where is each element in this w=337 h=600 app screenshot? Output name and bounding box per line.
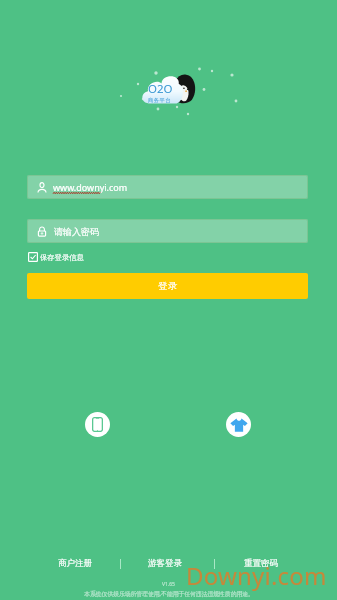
button[interactable]: Shop login xyxy=(226,412,251,437)
button[interactable]: 请输入密码 xyxy=(27,219,308,243)
staticText: 商务平台 xyxy=(148,97,172,104)
button[interactable]: 游客登录 xyxy=(131,553,199,573)
staticText: V1.65 xyxy=(162,581,175,588)
button[interactable]: 保存登录信息 xyxy=(28,252,84,262)
staticText: Downyi.com xyxy=(186,559,327,592)
button[interactable]: 重置密码 xyxy=(227,553,295,573)
staticText: www.downyi.com xyxy=(53,181,128,193)
button[interactable]: 登录 xyxy=(27,273,308,299)
staticText: O2O xyxy=(148,81,173,97)
staticText: 本系统仅供娱乐场所管理使用,不能用于任何违法违规性质的用途。 xyxy=(84,590,254,598)
button[interactable]: Mobile login xyxy=(85,412,110,437)
staticText: 重置密码 xyxy=(244,558,278,569)
button[interactable]: 商户注册 xyxy=(41,553,109,573)
staticText: 登录 xyxy=(158,280,178,292)
staticText: 游客登录 xyxy=(148,558,182,569)
staticText: 保存登录信息 xyxy=(40,253,84,262)
staticText: 商户注册 xyxy=(58,558,92,569)
staticText: 请输入密码 xyxy=(54,226,99,237)
button[interactable]: www.downyi.com xyxy=(27,175,308,199)
